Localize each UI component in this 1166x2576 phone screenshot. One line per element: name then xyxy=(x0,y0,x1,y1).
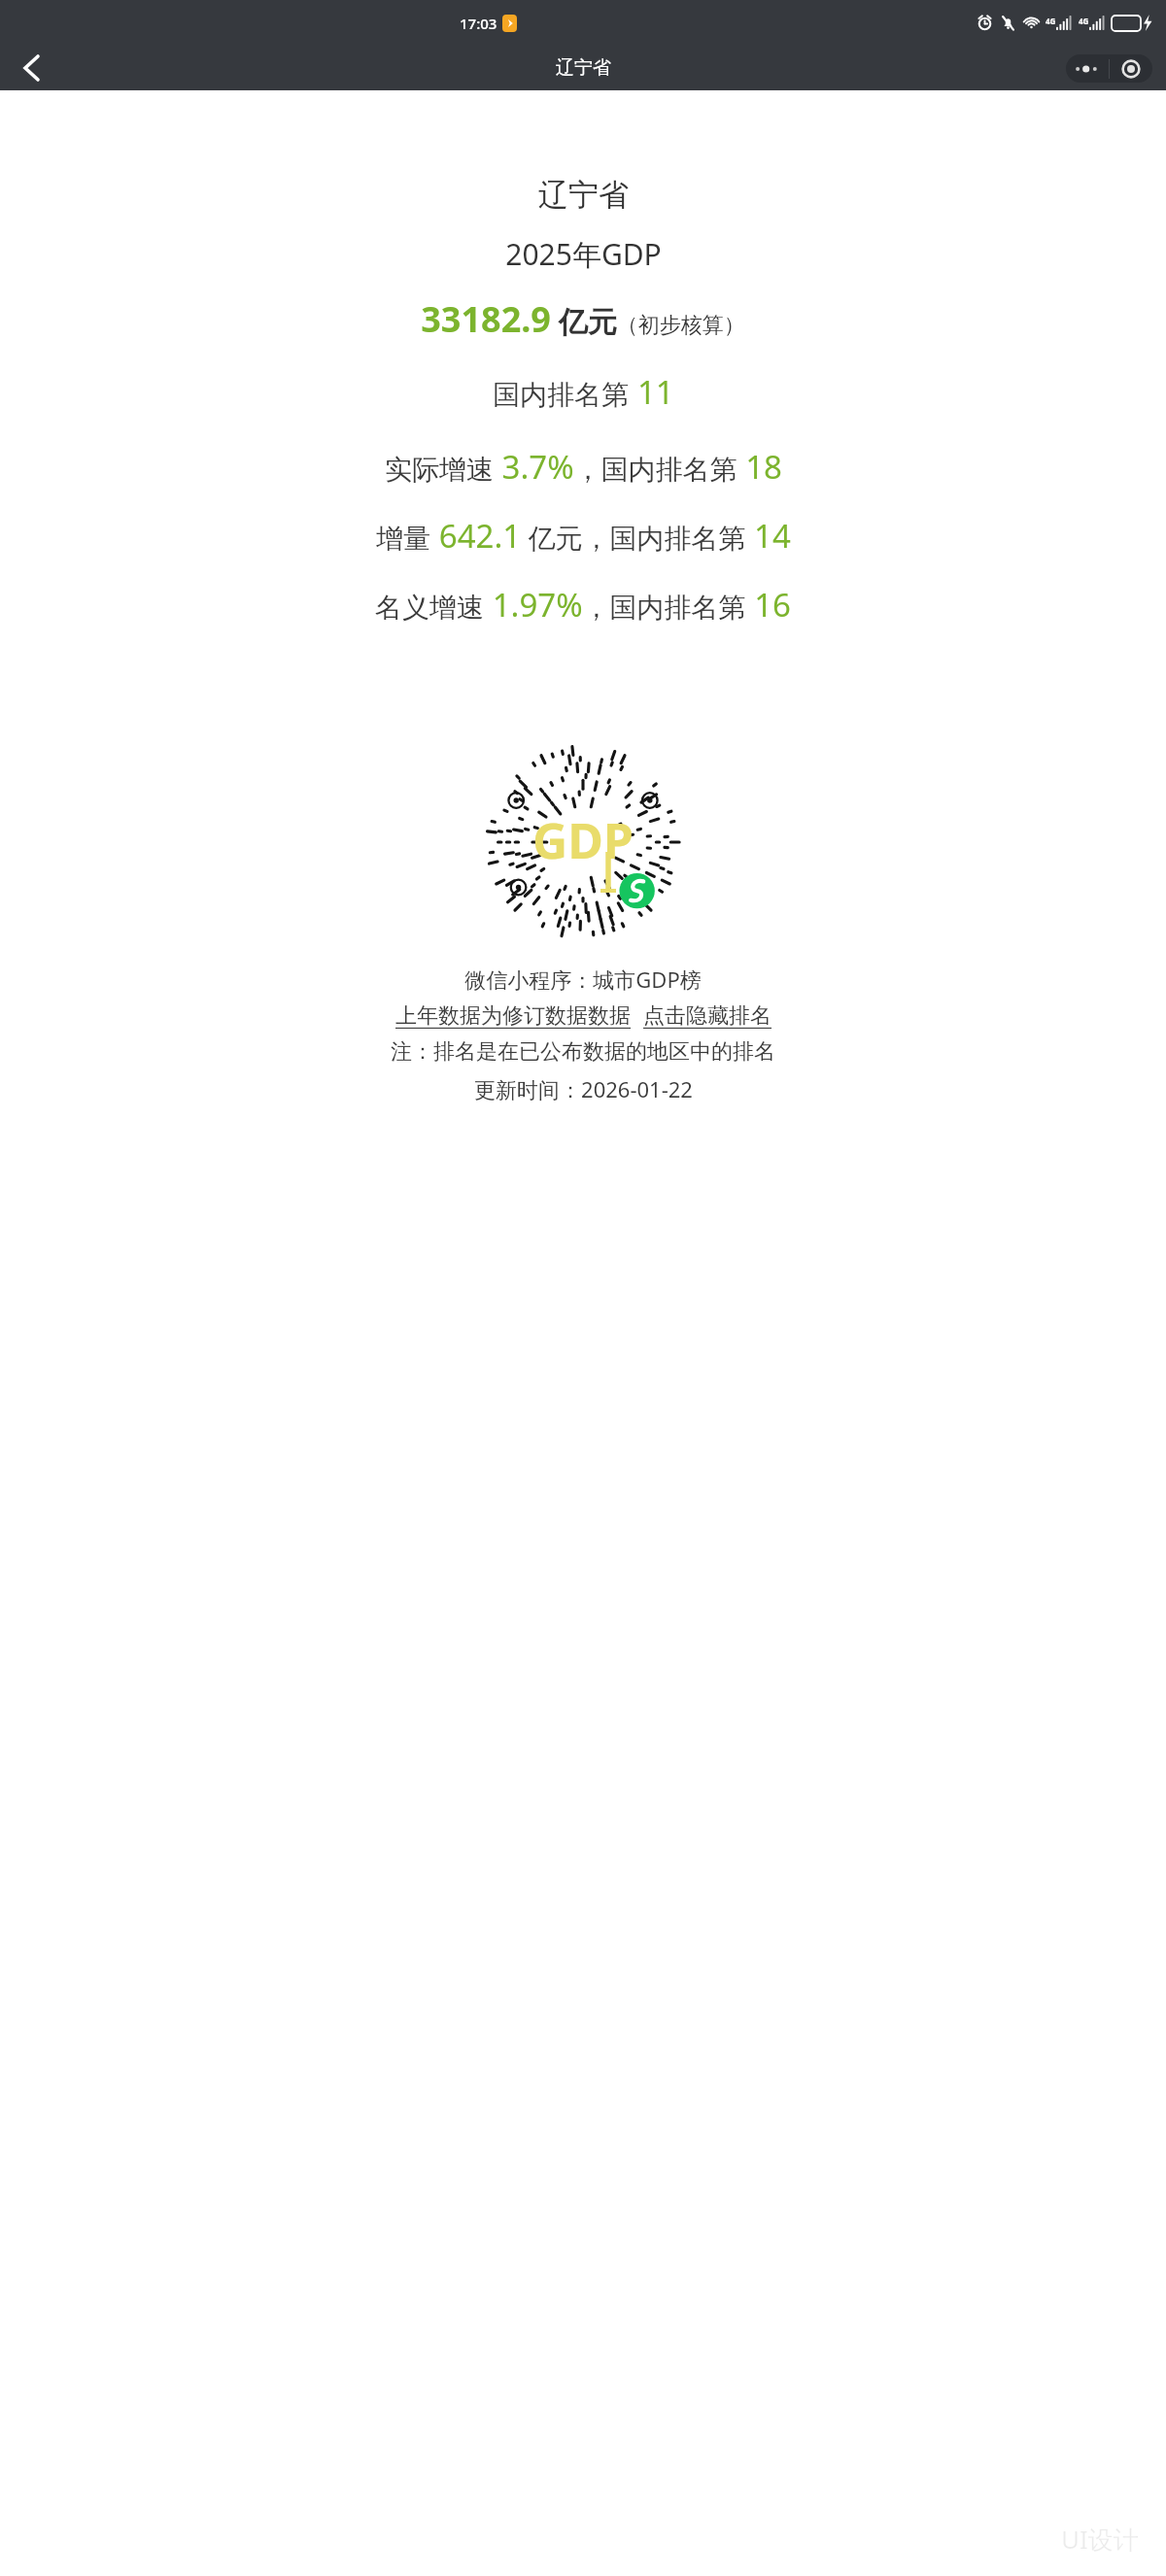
button[interactable]: 上年数据为修订数据数据 xyxy=(395,1002,631,1030)
button[interactable]: 点击隐藏排名 xyxy=(643,1002,772,1030)
button[interactable]: Close xyxy=(1110,54,1152,83)
staticText: 4G xyxy=(1079,16,1089,26)
button[interactable]: WeChat mini program code xyxy=(482,741,684,943)
staticText: 17:03 xyxy=(460,14,497,33)
staticText: 微信小程序：城市GDP榜 xyxy=(464,965,702,994)
staticText: 辽宁省 xyxy=(556,56,611,80)
staticText: 更新时间：2026-01-22 xyxy=(474,1074,693,1103)
button[interactable]: More xyxy=(1066,54,1109,83)
staticText: 实际增速 3.7%，国内排名第 18 xyxy=(385,445,782,489)
staticText: 增量 642.1 亿元，国内排名第 14 xyxy=(376,514,791,558)
staticText: GDP xyxy=(532,807,634,873)
staticText: 4G xyxy=(1046,16,1056,26)
staticText: 2025年GDP xyxy=(505,234,662,274)
staticText: 注：排名是在已公布数据的地区中的排名 xyxy=(391,1038,775,1066)
staticText: 辽宁省 xyxy=(538,176,629,214)
staticText: 33182.9 亿元（初步核算） xyxy=(421,295,745,343)
button[interactable]: Back xyxy=(8,46,54,90)
staticText: 名义增速 1.97%，国内排名第 16 xyxy=(375,583,791,627)
staticText: 国内排名第 11 xyxy=(493,370,674,414)
staticText: 点击隐藏排名 xyxy=(643,1002,772,1030)
staticText: 上年数据为修订数据数据 xyxy=(395,1002,631,1030)
staticText: UI设计 xyxy=(1061,2522,1139,2557)
